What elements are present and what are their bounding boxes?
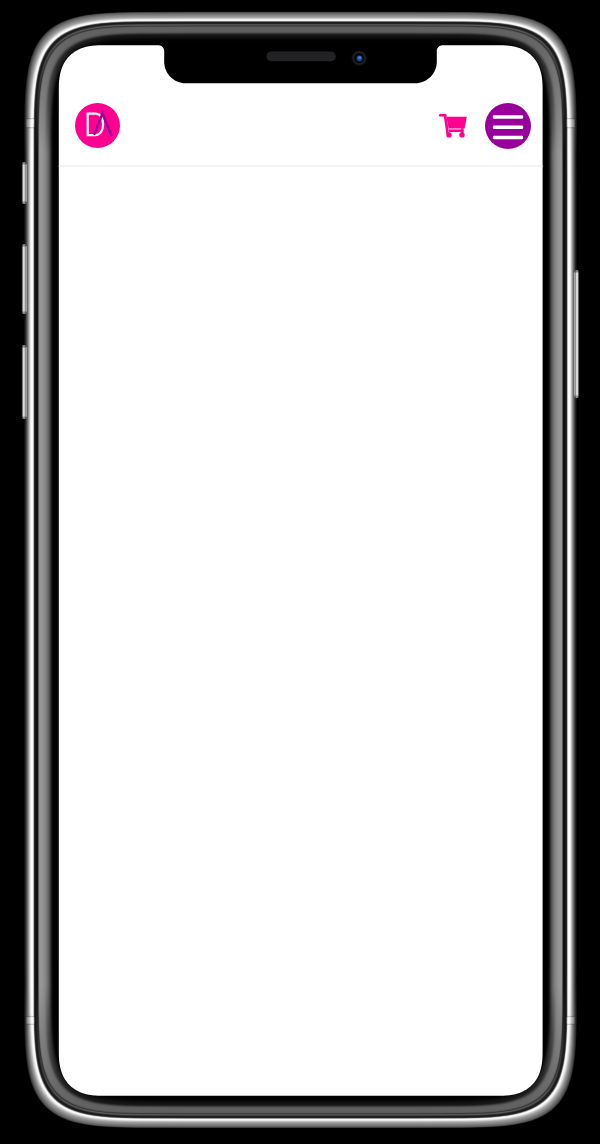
button[interactable]: Menu <box>485 103 531 149</box>
button[interactable]: Home <box>75 103 120 148</box>
button[interactable]: Shopping cart <box>434 108 470 144</box>
